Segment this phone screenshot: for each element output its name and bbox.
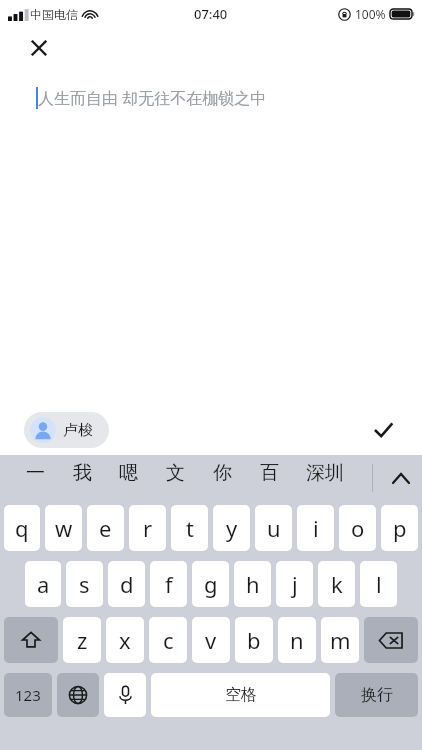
staticText: 空格 bbox=[225, 685, 257, 705]
button[interactable]: u bbox=[255, 505, 292, 551]
button[interactable]: a bbox=[25, 561, 61, 607]
button[interactable]: q bbox=[4, 505, 40, 551]
staticText: e bbox=[99, 513, 112, 543]
button[interactable]: Confirm bbox=[366, 413, 400, 447]
staticText: d bbox=[120, 569, 134, 599]
button[interactable]: Close bbox=[22, 31, 56, 65]
staticText: 07:40 bbox=[194, 5, 228, 23]
button[interactable]: s bbox=[66, 561, 103, 607]
button[interactable]: i bbox=[297, 505, 334, 551]
button[interactable]: j bbox=[276, 561, 313, 607]
button[interactable]: 123 bbox=[4, 673, 52, 717]
staticText: 深圳 bbox=[306, 461, 344, 485]
staticText: c bbox=[163, 625, 174, 655]
button[interactable]: 文 bbox=[164, 455, 187, 491]
staticText: b bbox=[247, 625, 261, 655]
button[interactable]: Shift bbox=[4, 617, 58, 663]
button[interactable]: 百 bbox=[258, 455, 281, 491]
button[interactable]: k bbox=[318, 561, 355, 607]
button[interactable]: 换行 bbox=[335, 673, 418, 717]
staticText: 换行 bbox=[361, 685, 393, 705]
staticText: j bbox=[292, 569, 298, 599]
staticText: n bbox=[290, 625, 304, 655]
button[interactable]: c bbox=[149, 617, 187, 663]
button[interactable]: l bbox=[360, 561, 397, 607]
staticText: o bbox=[351, 513, 365, 543]
staticText: f bbox=[165, 569, 173, 599]
staticText: 我 bbox=[73, 461, 92, 485]
staticText: 123 bbox=[15, 685, 41, 705]
button[interactable]: h bbox=[234, 561, 271, 607]
button[interactable]: Voice input bbox=[104, 673, 146, 717]
button[interactable]: 你 bbox=[211, 455, 234, 491]
button[interactable]: Expand candidates bbox=[372, 455, 422, 501]
staticText: q bbox=[15, 513, 29, 543]
staticText: 百 bbox=[260, 461, 279, 485]
staticText: g bbox=[204, 569, 218, 599]
button[interactable]: r bbox=[129, 505, 166, 551]
staticText: p bbox=[393, 513, 407, 543]
staticText: k bbox=[331, 569, 343, 599]
button[interactable]: 嗯 bbox=[117, 455, 140, 491]
staticText: 一 bbox=[26, 461, 45, 485]
button[interactable]: Switch language bbox=[57, 673, 99, 717]
button[interactable]: f bbox=[150, 561, 187, 607]
staticText: 你 bbox=[213, 461, 232, 485]
staticText: t bbox=[186, 513, 194, 543]
staticText: 人生而自由 却无往不在枷锁之中 bbox=[38, 87, 267, 109]
button[interactable]: p bbox=[381, 505, 418, 551]
button[interactable]: d bbox=[108, 561, 145, 607]
button[interactable]: e bbox=[87, 505, 124, 551]
staticText: y bbox=[226, 513, 238, 543]
button[interactable]: o bbox=[339, 505, 376, 551]
staticText: i bbox=[313, 513, 319, 543]
staticText: m bbox=[330, 625, 351, 655]
button[interactable]: 我 bbox=[71, 455, 94, 491]
staticText: h bbox=[246, 569, 260, 599]
staticText: 中国电信 bbox=[30, 7, 78, 22]
button[interactable]: 卢梭 bbox=[24, 412, 109, 448]
staticText: w bbox=[55, 513, 73, 543]
button[interactable]: 深圳 bbox=[304, 455, 346, 491]
staticText: 100% bbox=[355, 6, 386, 22]
button[interactable]: 一 bbox=[24, 455, 47, 491]
button[interactable]: 人生而自由 却无往不在枷锁之中 bbox=[36, 68, 402, 128]
staticText: u bbox=[267, 513, 281, 543]
button[interactable]: v bbox=[192, 617, 230, 663]
button[interactable]: n bbox=[278, 617, 316, 663]
staticText: 文 bbox=[166, 461, 185, 485]
button[interactable]: Backspace bbox=[364, 617, 418, 663]
button[interactable]: 空格 bbox=[151, 673, 330, 717]
button[interactable]: x bbox=[106, 617, 144, 663]
staticText: z bbox=[77, 625, 88, 655]
staticText: 卢梭 bbox=[63, 421, 93, 440]
button[interactable]: z bbox=[63, 617, 101, 663]
staticText: x bbox=[119, 625, 131, 655]
button[interactable]: b bbox=[235, 617, 273, 663]
button[interactable]: m bbox=[321, 617, 359, 663]
button[interactable]: y bbox=[213, 505, 250, 551]
button[interactable]: g bbox=[192, 561, 229, 607]
button[interactable]: w bbox=[45, 505, 82, 551]
staticText: s bbox=[79, 569, 90, 599]
staticText: 嗯 bbox=[119, 461, 138, 485]
staticText: v bbox=[205, 625, 217, 655]
staticText: a bbox=[37, 569, 50, 599]
staticText: r bbox=[143, 513, 153, 543]
button[interactable]: t bbox=[171, 505, 208, 551]
staticText: l bbox=[376, 569, 382, 599]
